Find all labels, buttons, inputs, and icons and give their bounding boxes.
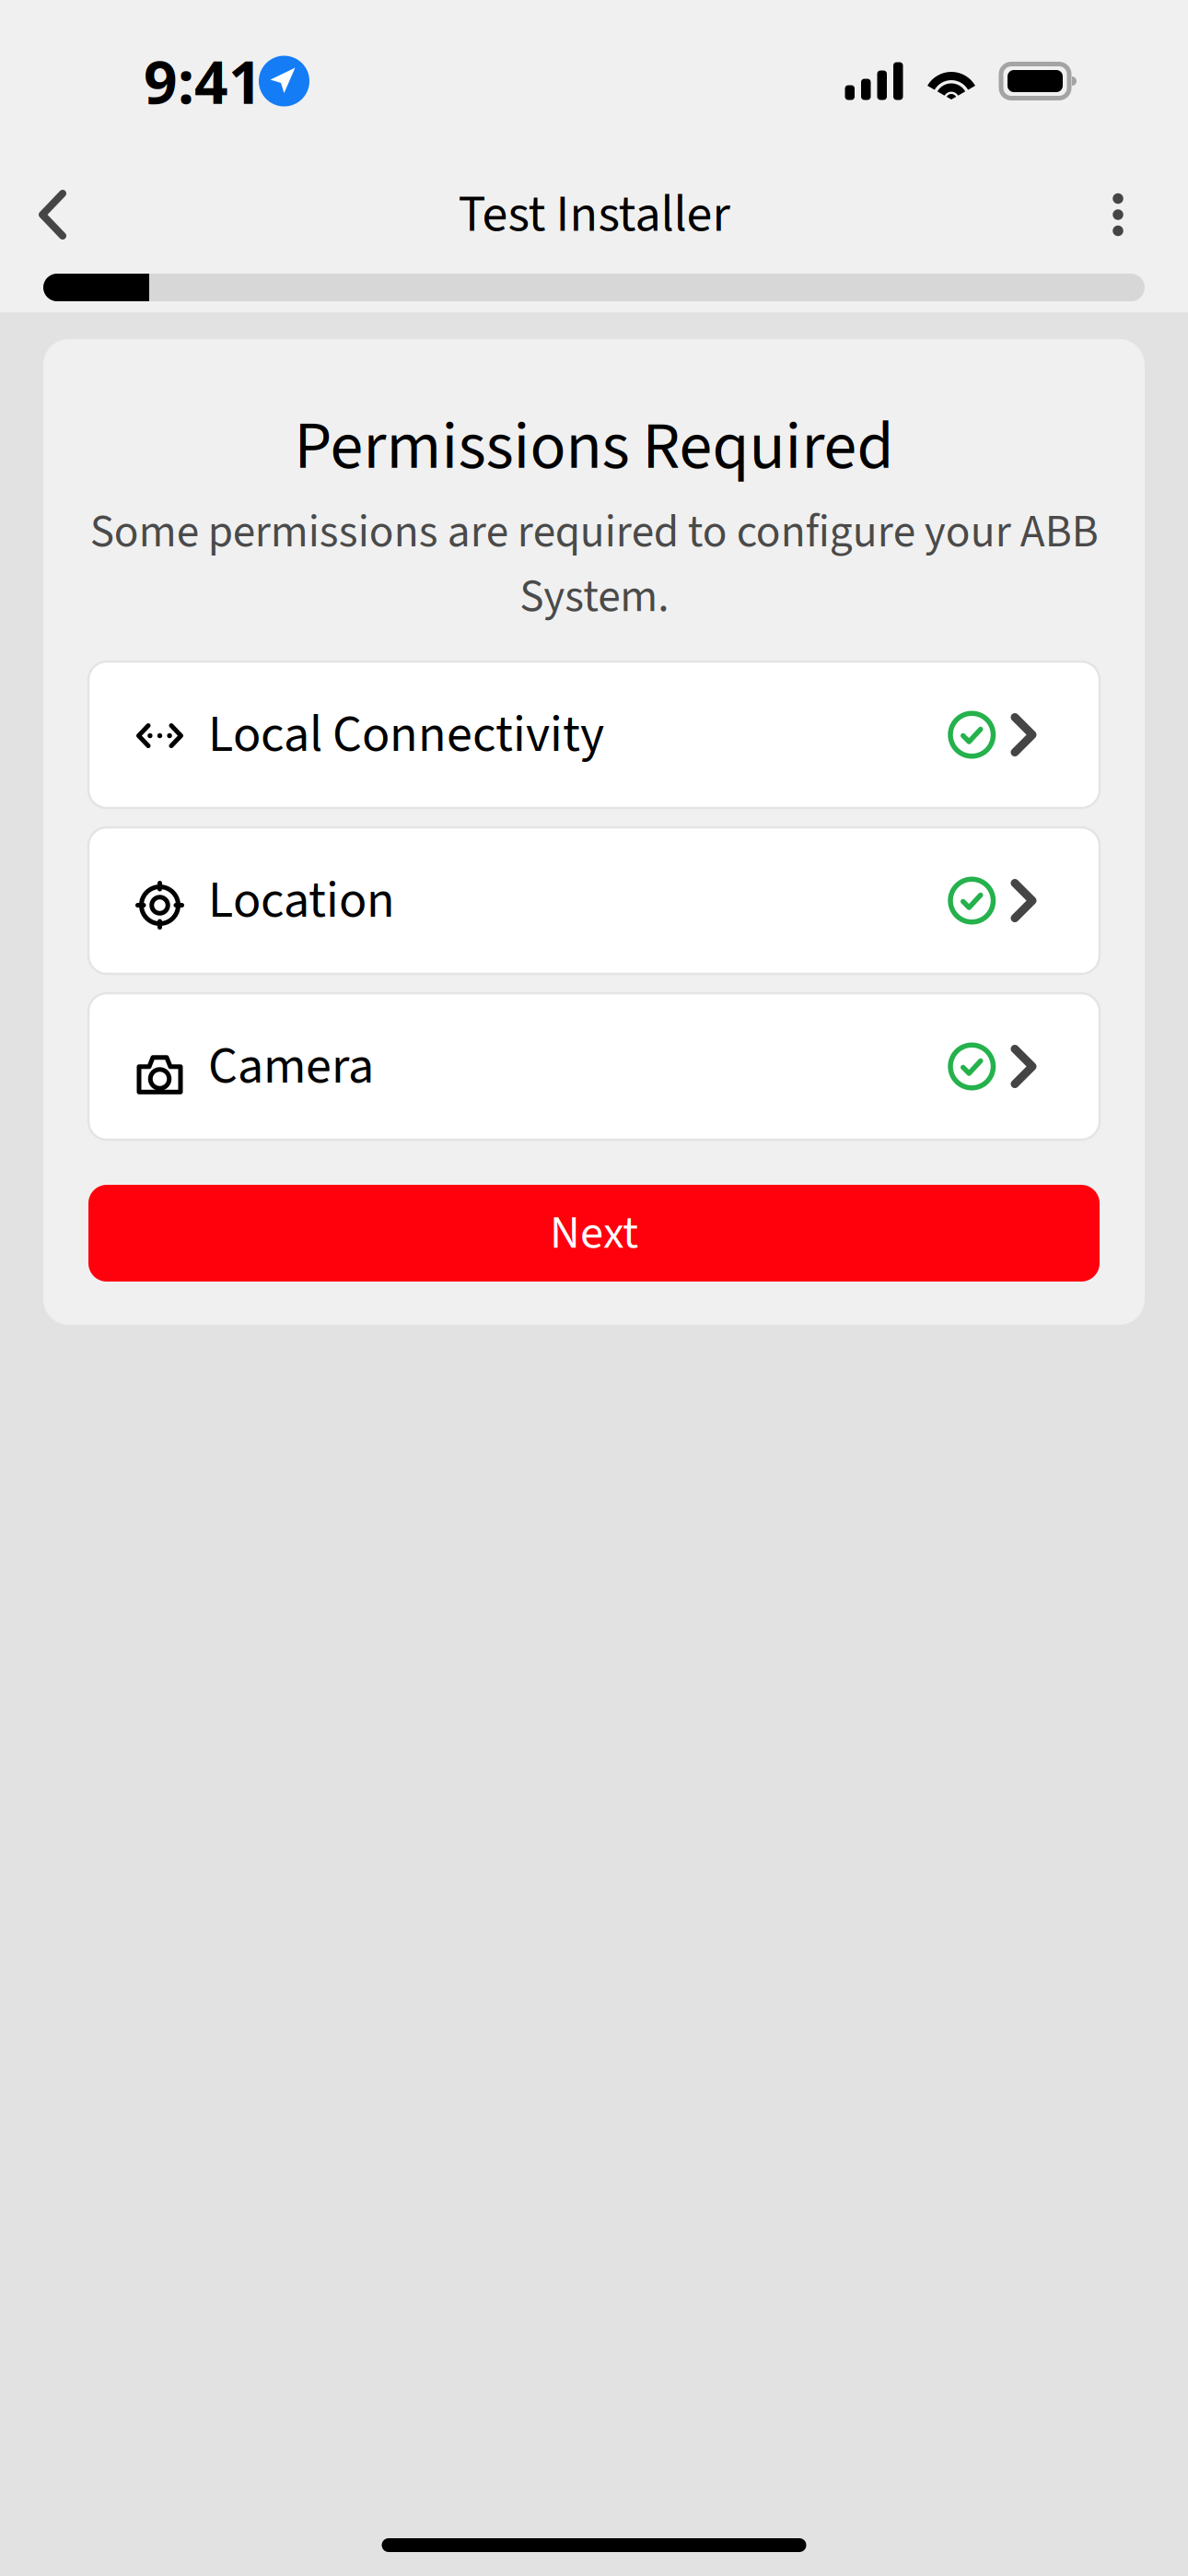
button[interactable]: More options (1074, 170, 1162, 259)
staticText: Location (208, 864, 395, 937)
button[interactable]: Location (88, 827, 1100, 974)
staticText: Camera (208, 1030, 374, 1103)
staticText: Some permissions are required to configu… (90, 500, 1098, 629)
staticText: Local Connectivity (208, 698, 604, 772)
button[interactable]: Local Connectivity (88, 662, 1100, 808)
staticText: 9:41 (144, 41, 262, 121)
staticText: Next (550, 1200, 638, 1266)
button[interactable]: Camera (88, 993, 1100, 1140)
button[interactable]: Next (88, 1185, 1100, 1282)
staticText: Permissions Required (294, 400, 894, 494)
staticText: Test Installer (458, 178, 730, 251)
button[interactable]: Back (8, 170, 97, 259)
